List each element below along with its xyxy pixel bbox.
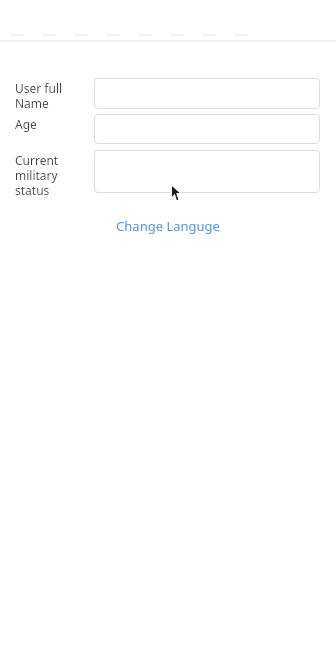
button[interactable]: Text field xyxy=(94,114,320,144)
staticText: Current military status xyxy=(15,152,59,198)
staticText: Age xyxy=(15,116,37,132)
button[interactable]: Text field xyxy=(94,150,320,193)
staticText: User full Name xyxy=(15,80,63,111)
button[interactable]: Text field xyxy=(94,78,320,109)
other: Pointer xyxy=(170,184,184,202)
staticText: Change Languge xyxy=(116,217,220,235)
button[interactable]: Change Languge xyxy=(0,217,336,235)
